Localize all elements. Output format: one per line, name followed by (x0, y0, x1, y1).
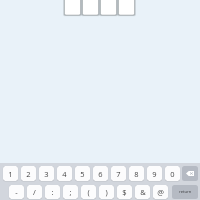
button[interactable]: : (45, 185, 60, 199)
button[interactable]: - (9, 185, 24, 199)
staticText: ( (87, 187, 90, 197)
staticText: 4 (62, 169, 67, 179)
button[interactable]: 3 (39, 166, 54, 181)
button[interactable]: Code digit 4 (118, 0, 135, 18)
button[interactable]: 9 (147, 166, 162, 181)
staticText: 6 (98, 169, 103, 179)
button[interactable]: & (135, 185, 150, 199)
staticText: - (15, 187, 18, 197)
button[interactable]: 7 (111, 166, 126, 181)
button[interactable]: Code digit 1 (64, 0, 81, 18)
button[interactable]: 6 (93, 166, 108, 181)
button[interactable]: ; (63, 185, 78, 199)
button[interactable]: return (172, 185, 198, 199)
staticText: 5 (80, 169, 85, 179)
button[interactable]: 1 (3, 166, 18, 181)
staticText: @ (157, 187, 164, 197)
staticText: 0 (170, 169, 175, 179)
staticText: 1 (8, 169, 13, 179)
button[interactable]: 8 (129, 166, 144, 181)
staticText: 7 (116, 169, 121, 179)
staticText: ) (105, 187, 108, 197)
staticText: ; (69, 187, 72, 197)
staticText: return (179, 189, 192, 195)
staticText: 2 (26, 169, 31, 179)
staticText: 9 (152, 169, 157, 179)
staticText: : (51, 187, 54, 197)
button[interactable]: $ (117, 185, 132, 199)
staticText: & (140, 187, 146, 197)
button[interactable]: ) (99, 185, 114, 199)
staticText: / (33, 187, 36, 197)
button[interactable]: Code digit 3 (100, 0, 117, 18)
button[interactable]: @ (153, 185, 168, 199)
staticText: 8 (134, 169, 139, 179)
button[interactable]: 5 (75, 166, 90, 181)
button[interactable]: ( (81, 185, 96, 199)
button[interactable]: Delete (182, 166, 198, 181)
button[interactable]: / (27, 185, 42, 199)
button[interactable]: 0 (165, 166, 180, 181)
button[interactable]: Code digit 2 (82, 0, 99, 18)
button[interactable]: 4 (57, 166, 72, 181)
button[interactable]: 2 (21, 166, 36, 181)
staticText: $ (122, 187, 127, 197)
staticText: 3 (44, 169, 49, 179)
